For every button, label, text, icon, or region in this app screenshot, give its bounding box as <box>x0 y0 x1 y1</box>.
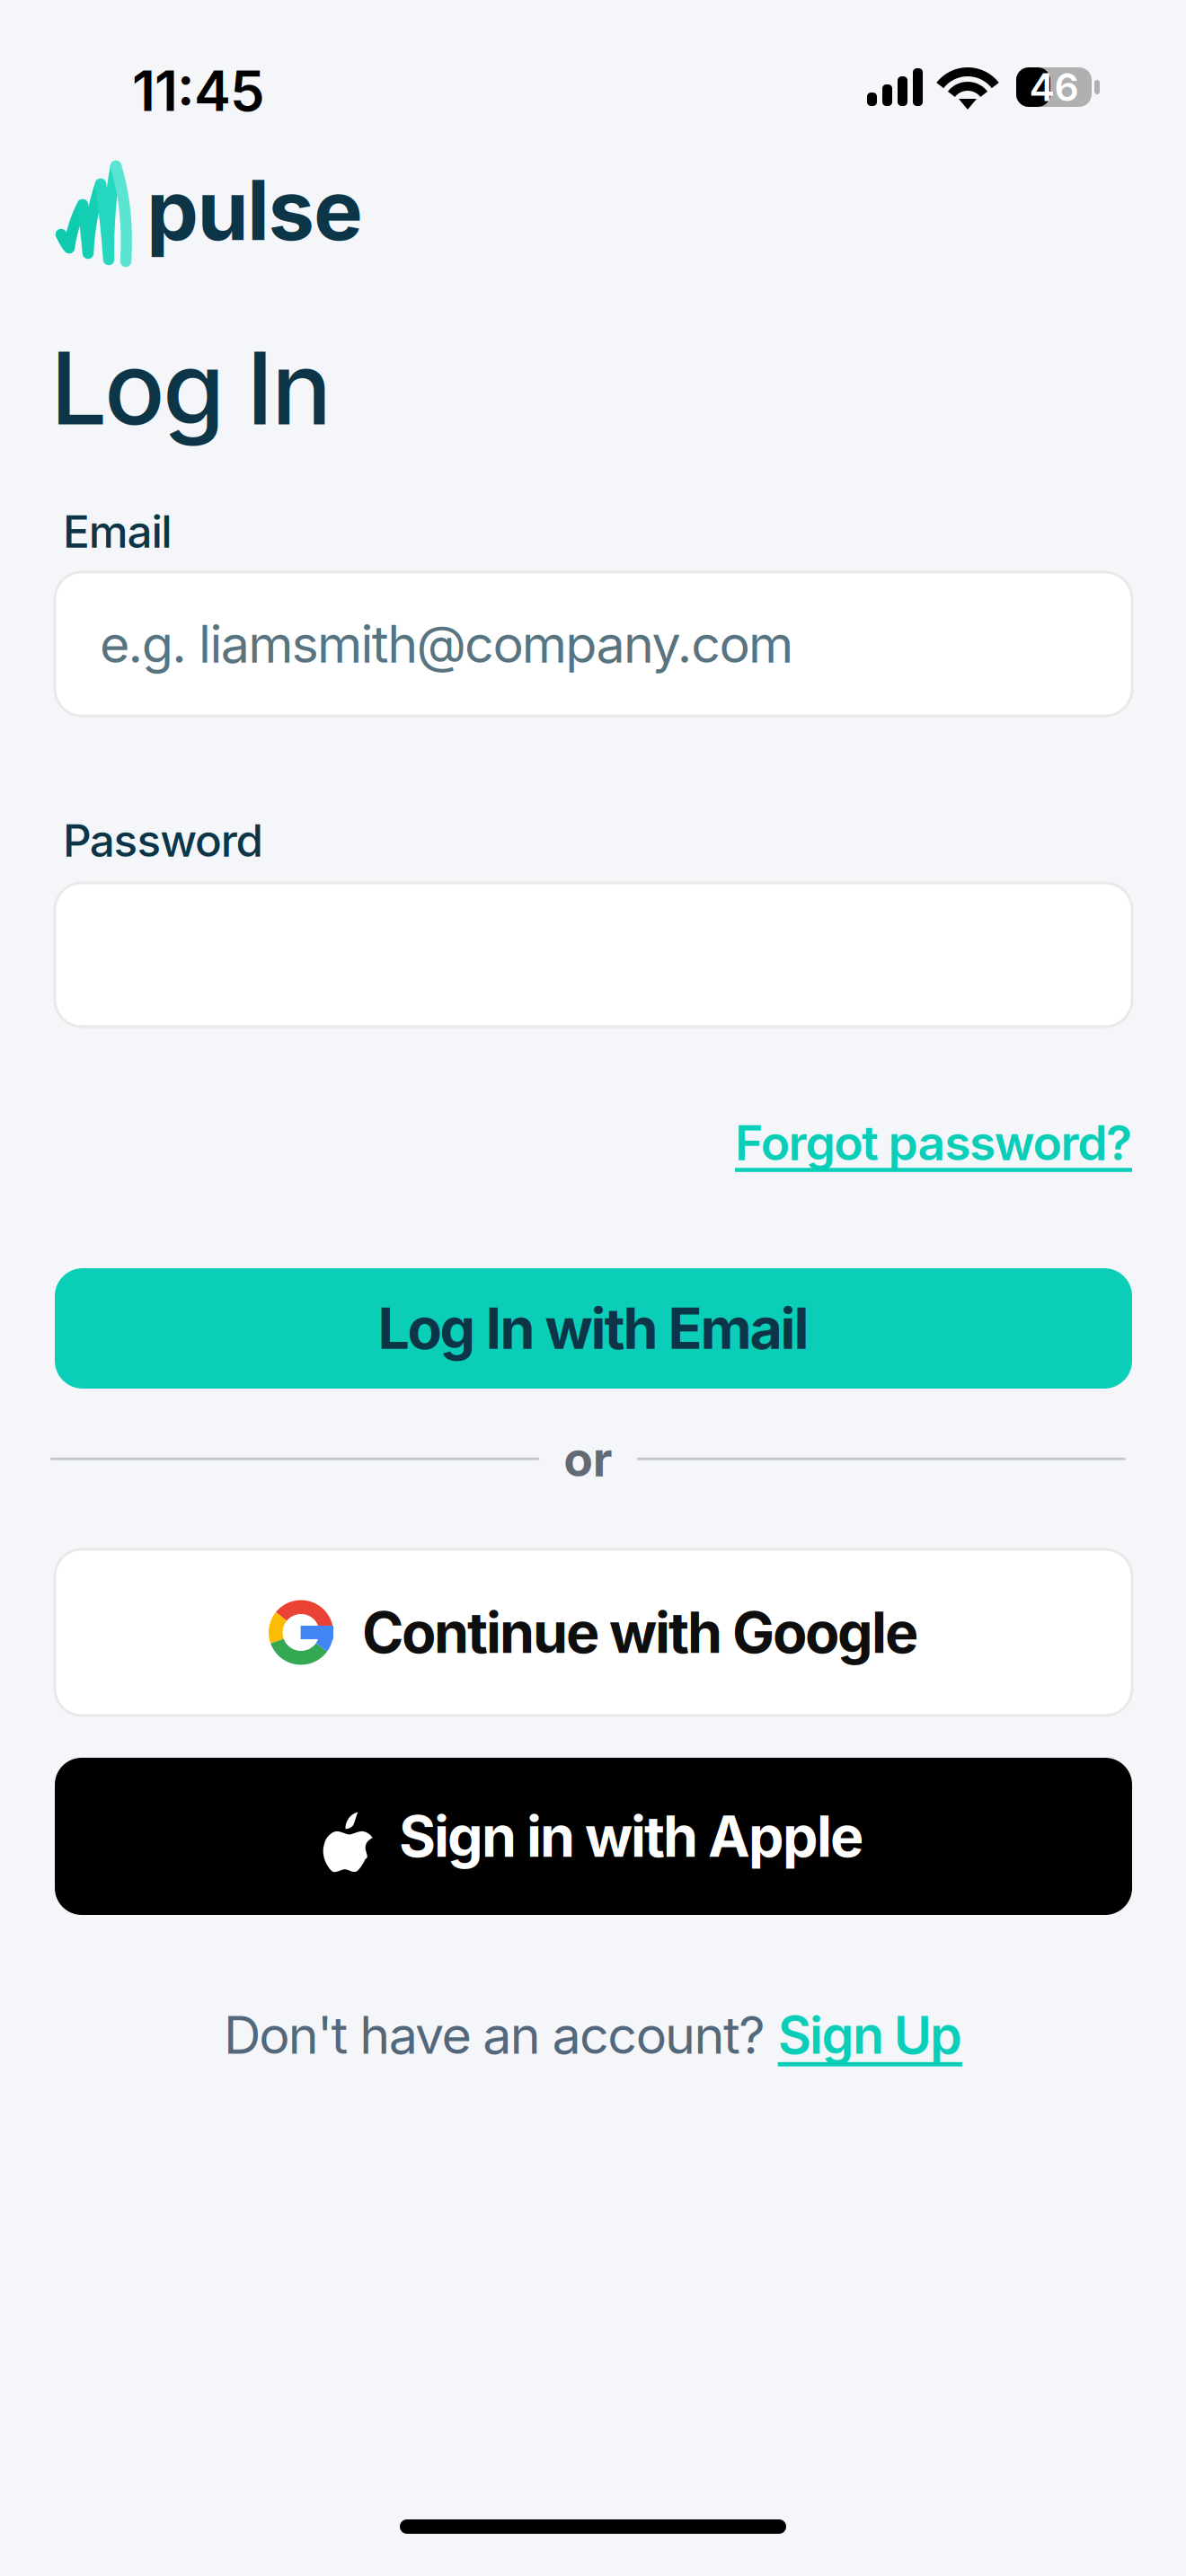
staticText: 11:45 <box>132 57 265 124</box>
staticText: Forgot password? <box>735 1114 1132 1172</box>
button[interactable]: Forgot password? <box>735 1114 1132 1172</box>
staticText: Don't have an account? <box>224 2004 778 2066</box>
staticText: Sign Up <box>778 2004 962 2066</box>
staticText: pulse <box>146 160 363 260</box>
button[interactable]: Continue with Google <box>55 1549 1132 1716</box>
staticText: Password <box>63 814 263 867</box>
staticText: 46 <box>1029 64 1079 110</box>
button[interactable]: Sign in with Apple <box>55 1758 1132 1915</box>
staticText: Continue with Google <box>362 1598 918 1666</box>
staticText: Log In <box>50 327 332 449</box>
button[interactable]: Sign Up <box>778 2004 962 2066</box>
button[interactable]: Log In with Email <box>55 1268 1132 1389</box>
staticText: Log In with Email <box>378 1294 809 1362</box>
staticText: Sign in with Apple <box>399 1802 863 1870</box>
staticText: or <box>564 1430 612 1488</box>
staticText: Email <box>63 505 172 558</box>
staticText: e.g. liamsmith@company.com <box>100 613 793 675</box>
